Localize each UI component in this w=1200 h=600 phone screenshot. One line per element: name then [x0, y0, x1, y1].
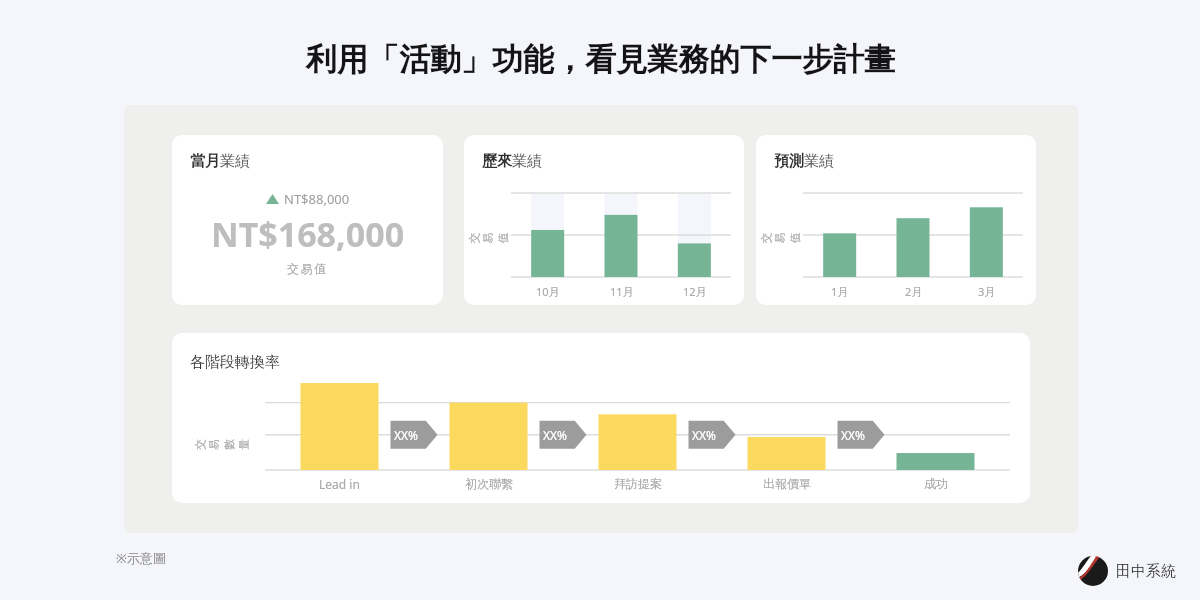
staticText: 田中系統	[1116, 562, 1176, 581]
staticText: ※示意圖	[116, 549, 166, 567]
staticText: 交易數量	[193, 426, 251, 450]
staticText: 交易值	[287, 261, 328, 276]
staticText: Lead in	[319, 476, 360, 492]
staticText: XX%	[394, 427, 419, 443]
staticText: 當月	[190, 152, 220, 171]
staticText: 業績	[220, 152, 250, 171]
button[interactable]: 各階段轉換率	[172, 333, 1030, 503]
staticText: 交易值	[466, 219, 509, 243]
staticText: 出報價單	[763, 476, 811, 491]
staticText: XX%	[543, 427, 568, 443]
staticText: 交易值	[758, 219, 801, 243]
staticText: 3月	[978, 284, 996, 299]
staticText: NT$88,000	[284, 190, 350, 208]
staticText: 歷來	[482, 152, 512, 171]
button[interactable]: 田中系統	[1078, 556, 1176, 586]
button[interactable]: 歷來	[464, 135, 744, 305]
staticText: 各階段轉換率	[190, 353, 280, 372]
staticText: 業績	[512, 152, 542, 171]
staticText: NT$168,000	[211, 211, 405, 257]
button[interactable]: 預測	[756, 135, 1036, 305]
staticText: XX%	[692, 427, 717, 443]
staticText: 預測	[774, 152, 804, 171]
staticText: 利用「活動」功能，看見業務的下一步計畫	[306, 40, 895, 79]
button[interactable]: 當月	[172, 135, 443, 305]
staticText: 12月	[683, 284, 707, 299]
staticText: 初次聯繫	[465, 476, 513, 491]
staticText: 2月	[905, 284, 923, 299]
staticText: 1月	[831, 284, 849, 299]
staticText: 成功	[924, 476, 948, 491]
staticText: 拜訪提案	[614, 476, 662, 491]
staticText: XX%	[841, 427, 866, 443]
staticText: 業績	[804, 152, 834, 171]
staticText: 11月	[610, 284, 634, 299]
staticText: 10月	[536, 284, 560, 299]
